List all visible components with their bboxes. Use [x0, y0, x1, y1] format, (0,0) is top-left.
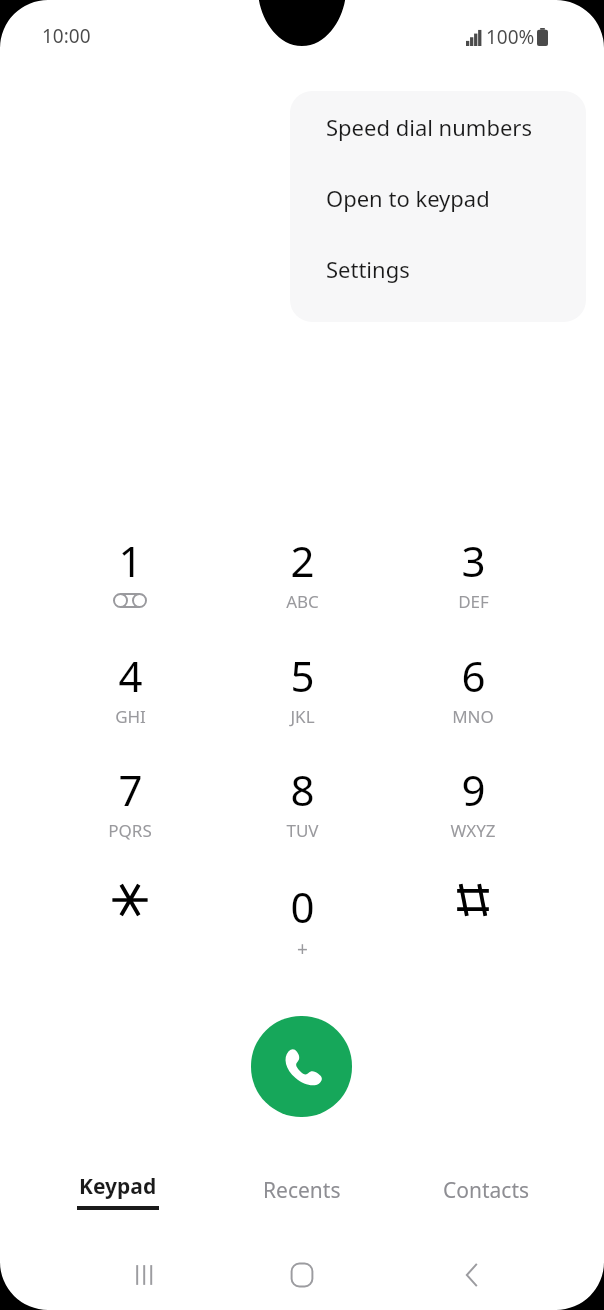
staticText: 100%: [486, 24, 535, 50]
button[interactable]: Keypad: [42, 1160, 194, 1222]
staticText: DEF: [458, 590, 489, 613]
staticText: 6: [461, 647, 486, 704]
staticText: 0: [290, 878, 315, 935]
staticText: 1: [118, 532, 143, 589]
button[interactable]: Call: [251, 1016, 352, 1117]
button[interactable]: Contacts: [410, 1160, 562, 1222]
staticText: 7: [118, 761, 143, 818]
staticText: 2: [290, 532, 315, 589]
staticText: +: [297, 936, 308, 962]
staticText: PQRS: [108, 819, 152, 842]
staticText: 5: [290, 647, 315, 704]
button[interactable]: 7: [58, 755, 202, 859]
button[interactable]: 1: [58, 526, 202, 630]
staticText: 4: [118, 647, 143, 704]
button[interactable]: Star: [58, 872, 202, 976]
staticText: Contacts: [443, 1176, 530, 1205]
button[interactable]: 9: [401, 755, 545, 859]
button[interactable]: Back: [416, 1245, 528, 1305]
staticText: 10:00: [42, 23, 91, 49]
staticText: Recents: [263, 1176, 341, 1205]
staticText: ABC: [286, 590, 319, 613]
button[interactable]: Recent apps: [88, 1245, 200, 1305]
staticText: MNO: [452, 705, 494, 728]
staticText: Keypad: [79, 1172, 157, 1201]
staticText: 3: [461, 532, 486, 589]
button[interactable]: Speed dial numbers: [290, 91, 586, 162]
button[interactable]: 3: [401, 526, 545, 630]
button[interactable]: Open to keypad: [290, 162, 586, 233]
button[interactable]: Settings: [290, 233, 586, 304]
staticText: TUV: [286, 819, 319, 842]
staticText: WXYZ: [450, 819, 496, 842]
button[interactable]: Recents: [226, 1160, 378, 1222]
button[interactable]: 6: [401, 641, 545, 745]
staticText: 8: [290, 761, 315, 818]
button[interactable]: 8: [230, 755, 374, 859]
button[interactable]: 4: [58, 641, 202, 745]
staticText: Open to keypad: [326, 183, 490, 213]
button[interactable]: 0: [230, 872, 374, 976]
staticText: Speed dial numbers: [326, 112, 532, 142]
staticText: GHI: [115, 705, 146, 728]
button[interactable]: Home: [246, 1245, 358, 1305]
button[interactable]: 2: [230, 526, 374, 630]
staticText: JKL: [290, 705, 315, 728]
button[interactable]: Pound: [401, 872, 545, 976]
staticText: 9: [461, 761, 486, 818]
staticText: Settings: [326, 254, 410, 284]
button[interactable]: 5: [230, 641, 374, 745]
